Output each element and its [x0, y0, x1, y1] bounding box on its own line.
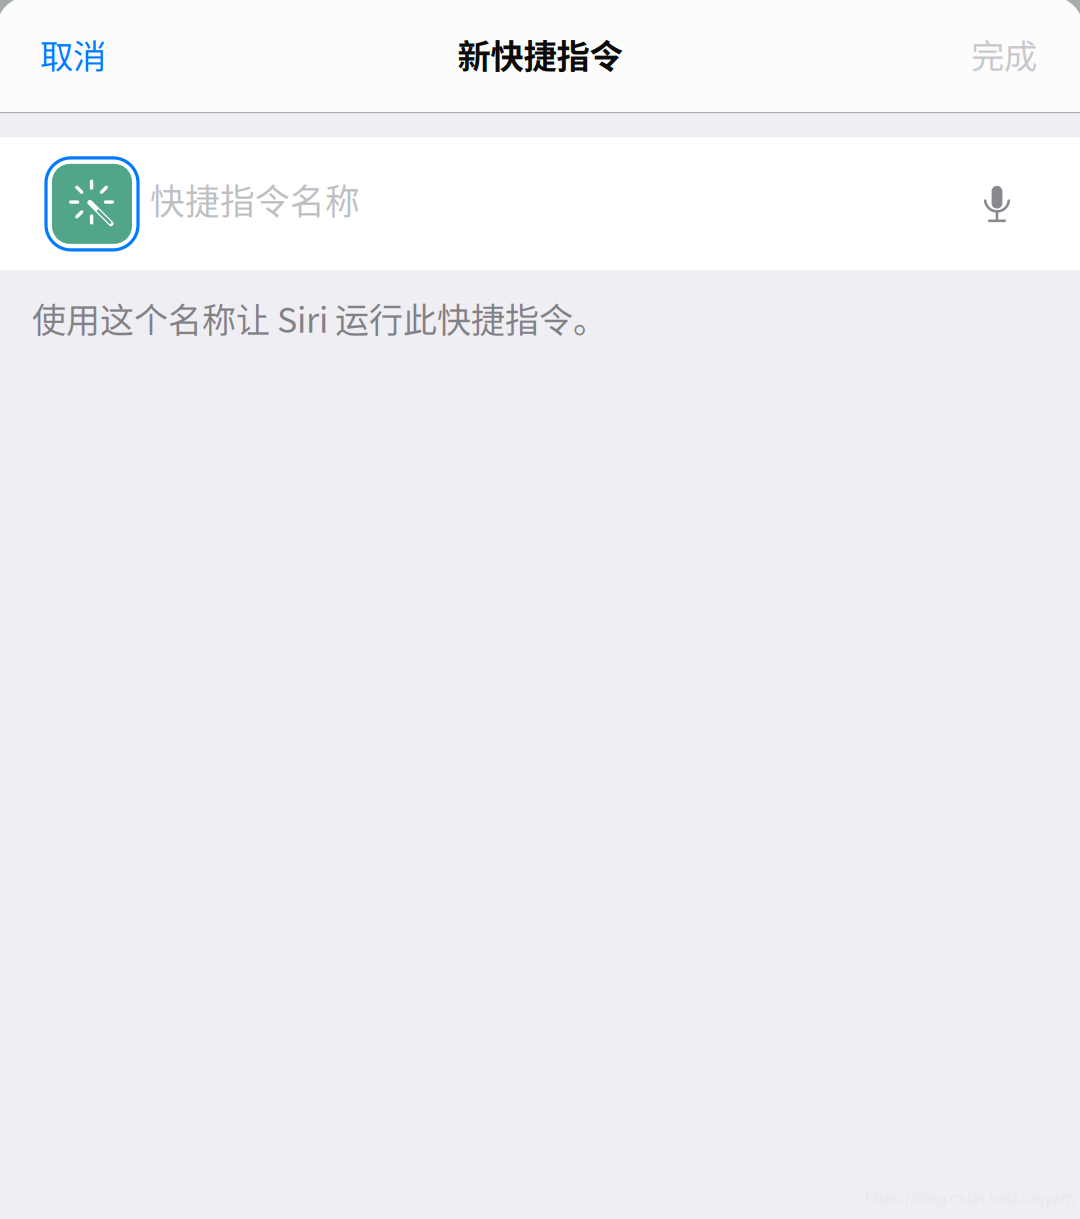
staticText: 使用这个名称让 Siri 运行此快捷指令。 [32, 293, 607, 343]
staticText: 新快捷指令 [457, 30, 622, 78]
button[interactable]: Dictate [977, 174, 1080, 234]
staticText: 快捷指令名称 [150, 174, 360, 224]
button[interactable]: 快捷指令名称 [138, 137, 977, 270]
button[interactable]: 取消 [0, 0, 150, 112]
button[interactable]: Choose icon [46, 158, 138, 250]
button[interactable]: 完成 [927, 0, 1080, 112]
staticText: 取消 [40, 30, 106, 78]
staticText: 完成 [971, 30, 1037, 78]
